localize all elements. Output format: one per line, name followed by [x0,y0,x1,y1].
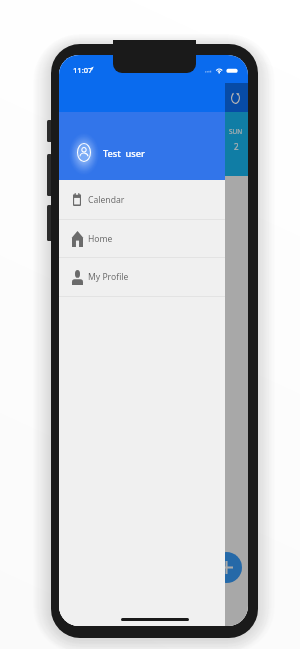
staticText: 2 [234,141,239,152]
button[interactable] [225,83,248,626]
button[interactable]: Home [59,220,225,257]
button[interactable]: Add [211,552,242,583]
button[interactable]: My Profile [59,258,225,296]
button[interactable]: Refresh [226,88,244,108]
staticText: My Profile [88,271,129,283]
staticText: SUN [229,127,243,136]
button[interactable]: Calendar [59,180,225,219]
staticText: Calendar [88,194,125,206]
staticText: Home [88,233,113,245]
staticText: 11:07 [73,65,93,75]
staticText: Test user [103,147,145,160]
